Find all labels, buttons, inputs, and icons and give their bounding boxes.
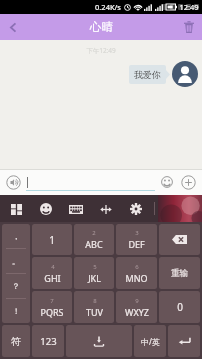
button[interactable]: 5 — [74, 257, 114, 289]
staticText: 0.24K/s — [95, 2, 121, 12]
staticText: 12:49 — [179, 2, 199, 12]
staticText: 5 — [93, 263, 97, 271]
button[interactable]: 123 — [32, 325, 64, 357]
staticText: ？ — [12, 281, 20, 291]
staticText: 2 — [92, 229, 96, 237]
button[interactable]: Avatar — [172, 61, 198, 87]
staticText: ABC — [85, 238, 103, 250]
staticText: 中/英 — [141, 336, 160, 347]
staticText: MNO — [125, 272, 148, 284]
button[interactable]: Back — [0, 14, 26, 40]
staticText: PQRS — [40, 306, 64, 318]
staticText: GHI — [44, 272, 61, 284]
button[interactable]: Space — [66, 325, 132, 357]
button[interactable]: Add attachment — [178, 172, 198, 192]
staticText: 123 — [40, 335, 57, 348]
staticText: 3 — [135, 229, 139, 237]
staticText: 4 — [51, 263, 55, 271]
other: Backspace — [159, 224, 200, 255]
button[interactable]: 重输 — [159, 257, 200, 289]
button[interactable]: Keyboard panel — [6, 199, 26, 219]
staticText: TUV — [86, 306, 103, 318]
button[interactable]: 7 — [32, 291, 72, 323]
staticText: ， — [12, 231, 20, 241]
staticText: DEF — [128, 238, 145, 250]
staticText: 重输 — [171, 268, 188, 279]
button[interactable]: 3 — [116, 224, 157, 255]
button[interactable]: Emoji — [158, 173, 176, 191]
button[interactable]: 8 — [74, 291, 114, 323]
staticText: 7 — [50, 297, 54, 305]
staticText: JKL — [88, 272, 101, 284]
button[interactable]: Settings — [126, 199, 146, 219]
button[interactable]: 4 — [32, 257, 72, 289]
staticText: 1 — [49, 233, 55, 247]
staticText: 下午12:49 — [0, 46, 202, 55]
staticText: 0 — [177, 300, 183, 314]
button[interactable]: ， — [2, 224, 30, 323]
button[interactable]: Hide keyboard — [162, 199, 182, 219]
staticText: 心晴 — [90, 20, 113, 34]
staticText: 符 — [11, 335, 21, 348]
staticText: 8 — [93, 297, 97, 305]
staticText: 6 — [135, 263, 139, 271]
button[interactable]: 2 — [74, 224, 114, 255]
other: Enter — [168, 325, 200, 357]
button[interactable]: 6 — [116, 257, 157, 289]
button[interactable]: Delete — [176, 14, 202, 40]
staticText: WXYZ — [125, 306, 149, 318]
other: Space — [66, 325, 132, 357]
button[interactable]: 我爱你 — [129, 65, 166, 84]
button[interactable]: Theme preview — [158, 195, 202, 222]
button[interactable]: 中/英 — [134, 325, 166, 357]
staticText: 9 — [135, 297, 139, 305]
staticText: 我爱你 — [134, 69, 161, 80]
button[interactable]: Voice input — [4, 173, 22, 191]
button[interactable]: Backspace — [159, 224, 200, 255]
button[interactable]: 0 — [159, 291, 200, 323]
button[interactable]: 符 — [2, 325, 30, 357]
button[interactable]: Enter — [168, 325, 200, 357]
button[interactable]: Resize keyboard — [96, 199, 116, 219]
staticText: ！ — [12, 306, 20, 316]
button[interactable] — [26, 173, 155, 191]
button[interactable]: 1 — [32, 224, 72, 255]
staticText: 。 — [12, 256, 20, 266]
button[interactable]: Emoji panel — [36, 199, 56, 219]
button[interactable]: 9 — [116, 291, 157, 323]
button[interactable]: Switch keyboard layout — [66, 199, 86, 219]
